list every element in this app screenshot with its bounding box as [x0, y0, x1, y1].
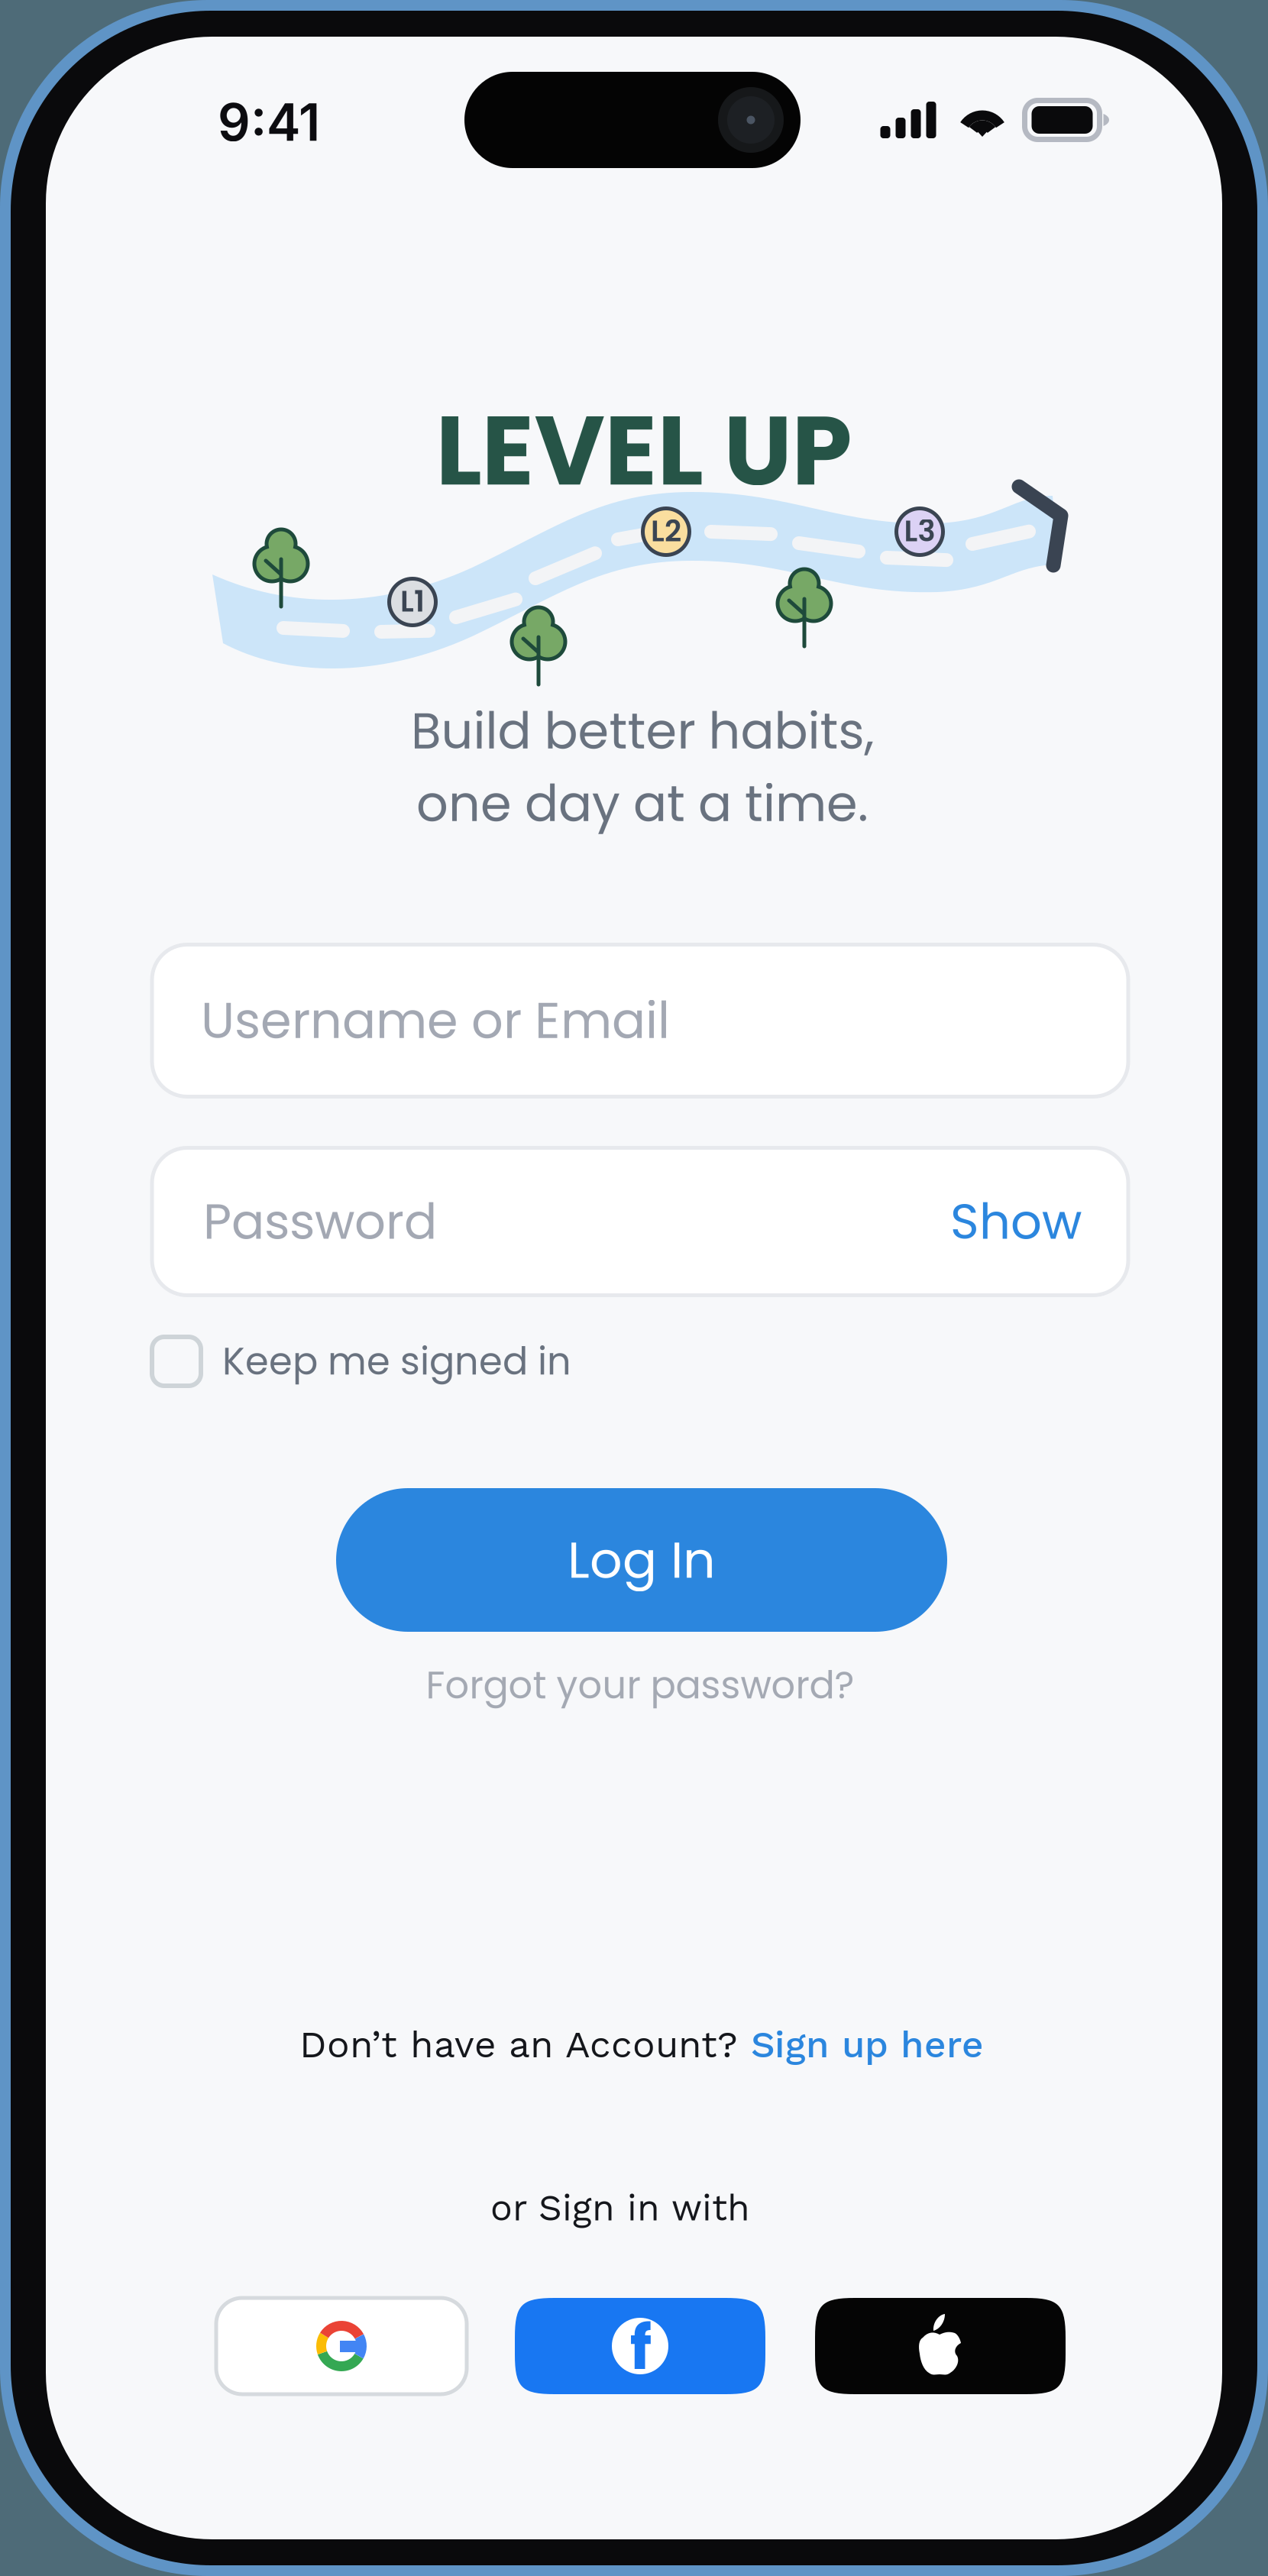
button[interactable]: Show — [932, 1176, 1100, 1267]
button[interactable]: Sign in with Apple — [815, 2298, 1066, 2394]
staticText: Build better habits, — [411, 696, 874, 766]
staticText: f — [630, 2305, 652, 2390]
staticText: or Sign in with — [490, 2186, 750, 2229]
staticText: LEVEL UP — [436, 383, 852, 518]
staticText: Log In — [568, 1524, 716, 1596]
staticText: Show — [950, 1187, 1082, 1256]
button[interactable]: Sign in with Google — [216, 2298, 467, 2394]
staticText: L1 — [400, 581, 425, 622]
button[interactable]: Log In — [336, 1488, 947, 1632]
button[interactable]: Sign in with Facebook — [515, 2298, 765, 2394]
staticText: L3 — [904, 510, 935, 552]
staticText: L2 — [651, 510, 681, 552]
staticText: Don’t have an Account? — [299, 2022, 751, 2066]
staticText: Username or Email — [201, 986, 670, 1056]
staticText: Password — [203, 1187, 437, 1256]
staticText: one day at a time. — [416, 769, 869, 839]
staticText: Sign up here — [751, 2022, 984, 2066]
staticText: Forgot your password? — [426, 1659, 854, 1712]
button[interactable]: Keep me signed in — [152, 1326, 610, 1396]
staticText: Keep me signed in — [222, 1335, 571, 1388]
button[interactable]: Sign up here — [751, 2022, 984, 2066]
button[interactable]: Forgot your password? — [373, 1651, 907, 1720]
staticText: 9:41 — [218, 91, 320, 153]
